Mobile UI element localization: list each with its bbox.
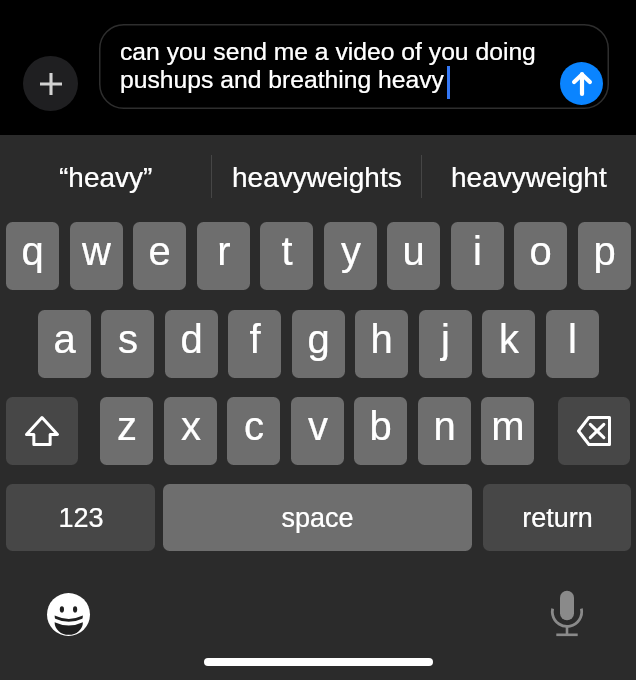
staticText: v bbox=[308, 404, 328, 449]
button[interactable]: heavyweight bbox=[422, 135, 636, 210]
staticText: z bbox=[117, 404, 137, 449]
staticText: p bbox=[593, 229, 616, 274]
staticText: r bbox=[217, 229, 231, 274]
staticText: i bbox=[473, 229, 482, 274]
staticText: 123 bbox=[58, 503, 104, 533]
button[interactable]: w bbox=[70, 222, 123, 290]
staticText: t bbox=[281, 229, 293, 274]
button[interactable]: return bbox=[483, 484, 631, 551]
button[interactable]: y bbox=[324, 222, 377, 290]
staticText: pushups and breathing heavy bbox=[120, 66, 444, 94]
staticText: o bbox=[529, 229, 552, 274]
button[interactable]: r bbox=[197, 222, 250, 290]
button[interactable]: e bbox=[133, 222, 186, 290]
button[interactable]: h bbox=[355, 310, 408, 378]
button[interactable]: q bbox=[6, 222, 59, 290]
staticText: space bbox=[281, 503, 354, 533]
staticText: q bbox=[21, 229, 44, 274]
staticText: can you send me a video of you doing bbox=[120, 38, 536, 66]
staticText: x bbox=[181, 404, 201, 449]
button[interactable]: Emoji keyboard bbox=[47, 593, 90, 636]
button[interactable]: k bbox=[482, 310, 535, 378]
staticText: h bbox=[370, 317, 393, 362]
staticText: a bbox=[53, 317, 76, 362]
button[interactable]: o bbox=[514, 222, 567, 290]
staticText: b bbox=[369, 404, 392, 449]
staticText: heavyweight bbox=[451, 162, 607, 193]
staticText: j bbox=[441, 317, 450, 362]
button[interactable]: z bbox=[100, 397, 153, 465]
staticText: m bbox=[491, 404, 525, 449]
button[interactable]: j bbox=[419, 310, 472, 378]
button[interactable]: Shift bbox=[6, 397, 78, 465]
button[interactable]: t bbox=[260, 222, 313, 290]
staticText: w bbox=[82, 229, 111, 274]
button[interactable]: n bbox=[418, 397, 471, 465]
button[interactable]: Backspace bbox=[558, 397, 630, 465]
button[interactable]: s bbox=[101, 310, 154, 378]
staticText: d bbox=[180, 317, 203, 362]
staticText: c bbox=[244, 404, 264, 449]
button[interactable]: l bbox=[546, 310, 599, 378]
staticText: s bbox=[118, 317, 138, 362]
button[interactable]: space bbox=[163, 484, 472, 551]
button[interactable]: m bbox=[481, 397, 534, 465]
staticText: k bbox=[499, 317, 519, 362]
button[interactable]: heavyweights bbox=[211, 135, 422, 210]
staticText: y bbox=[341, 229, 361, 274]
button[interactable]: c bbox=[227, 397, 280, 465]
button[interactable]: g bbox=[292, 310, 345, 378]
button[interactable]: 123 bbox=[6, 484, 155, 551]
button[interactable]: v bbox=[291, 397, 344, 465]
button[interactable]: x bbox=[164, 397, 217, 465]
staticText: u bbox=[402, 229, 425, 274]
button[interactable]: “heavy” bbox=[0, 135, 211, 210]
button[interactable]: p bbox=[578, 222, 631, 290]
button[interactable]: f bbox=[228, 310, 281, 378]
button[interactable]: Add attachment bbox=[23, 56, 78, 111]
staticText: heavyweights bbox=[232, 162, 402, 193]
button[interactable]: i bbox=[451, 222, 504, 290]
staticText: g bbox=[307, 317, 330, 362]
button[interactable]: d bbox=[165, 310, 218, 378]
staticText: “heavy” bbox=[59, 162, 153, 193]
staticText: f bbox=[249, 317, 261, 362]
button[interactable]: u bbox=[387, 222, 440, 290]
button[interactable]: a bbox=[38, 310, 91, 378]
staticText: n bbox=[433, 404, 456, 449]
button[interactable]: Dictation bbox=[545, 588, 589, 638]
button[interactable]: Send bbox=[560, 62, 603, 105]
staticText: e bbox=[148, 229, 171, 274]
staticText: return bbox=[522, 503, 593, 533]
button[interactable]: b bbox=[354, 397, 407, 465]
staticText: l bbox=[568, 317, 577, 362]
